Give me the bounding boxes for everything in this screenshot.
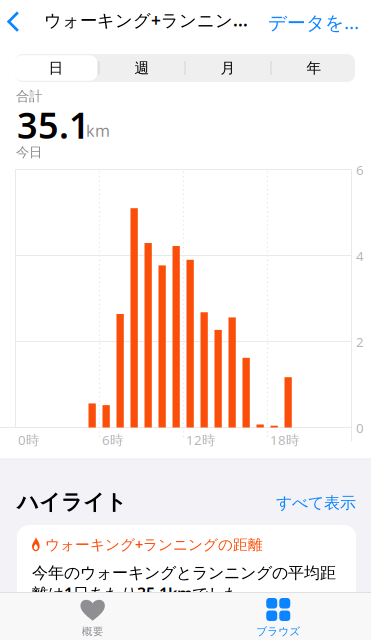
staticText: 2 [356,333,364,351]
staticText: 6時 [102,431,123,449]
button[interactable]: ブラウズ [185,592,371,640]
staticText: データを追加 [268,10,368,34]
staticText: 概要 [82,625,104,638]
staticText: 合計 [16,88,42,104]
button[interactable]: 日 [13,54,98,82]
button[interactable]: 概要 [0,592,185,640]
staticText: 18時 [270,431,299,449]
button[interactable]: 週 [99,54,184,82]
staticText: 0時 [18,431,39,449]
button[interactable]: 月 [185,54,270,82]
staticText: km [86,120,110,141]
staticText: 日 [48,59,63,77]
button[interactable]: 戻る [1,8,31,38]
staticText: 35.1 [17,101,90,149]
button[interactable]: データを追加 [268,11,368,33]
staticText: 今年のウォーキングとランニングの平均距離は1日あたり35.1kmでした。 [32,563,336,604]
staticText: 月 [220,59,235,77]
staticText: 6 [356,161,364,179]
staticText: ブラウズ [256,625,300,638]
button[interactable]: すべて表示 [272,493,356,513]
staticText: すべて表示 [276,493,356,513]
button[interactable]: 年 [271,54,356,82]
staticText: 4 [356,247,364,265]
staticText: ウォーキング+ランニング… [44,8,252,32]
staticText: 12時 [186,431,215,449]
staticText: 年 [306,59,321,77]
staticText: ハイライト [17,489,127,515]
button[interactable]: ウォーキング+ランニングの距離 [17,525,356,616]
staticText: ウォーキング+ランニングの距離 [45,534,263,554]
staticText: 週 [134,59,149,77]
staticText: 今日 [16,144,42,160]
staticText: 0 [356,419,364,437]
